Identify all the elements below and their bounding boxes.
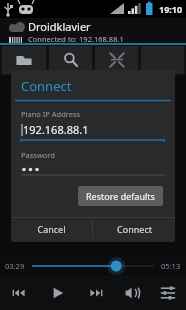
button[interactable]: Search (49, 46, 92, 74)
staticText: Connect (21, 77, 72, 95)
button[interactable]: Collapse (95, 46, 138, 74)
staticText: 05:13 (161, 261, 181, 271)
button[interactable]: Volume (114, 276, 150, 310)
button[interactable]: Settings (150, 276, 186, 310)
button[interactable]: Next (78, 276, 114, 310)
staticText: Restore defaults (86, 190, 155, 202)
staticText: Piano IP Address (21, 109, 81, 119)
staticText: Password (21, 150, 55, 160)
button[interactable]: Connect (93, 218, 175, 240)
staticText: 19:10 (159, 3, 183, 15)
staticText: 03:29 (5, 261, 25, 271)
button[interactable]: Seek bar (32, 256, 154, 276)
staticText: Cancel (37, 223, 66, 235)
button[interactable]: Restore defaults (78, 186, 163, 206)
button[interactable]: Open folder (2, 46, 46, 74)
button[interactable]: Previous (0, 276, 37, 310)
staticText: 192.168.88.1 (23, 122, 89, 137)
staticText: Connected to: 192.168.88.1 (28, 34, 124, 44)
staticText: Connect (117, 223, 152, 235)
button[interactable]: Cancel (11, 218, 92, 240)
button[interactable]: Play (37, 276, 78, 310)
staticText: Droidklavier (28, 19, 91, 34)
